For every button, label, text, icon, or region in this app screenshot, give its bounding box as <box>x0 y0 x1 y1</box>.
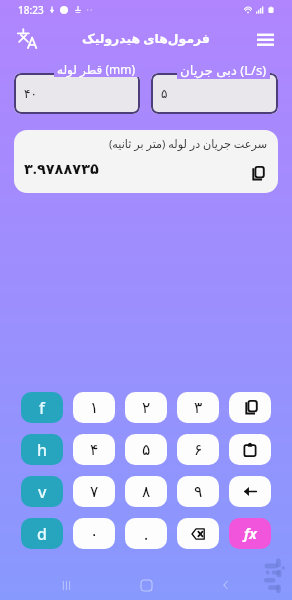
button[interactable]: h <box>21 434 63 465</box>
staticText: ۵ <box>161 87 168 101</box>
staticText: ۳ <box>194 399 203 417</box>
button[interactable]: d <box>21 518 63 549</box>
button[interactable]: ۵ <box>125 434 167 465</box>
staticText: ۳.۹۷۸۸۷۳۵ <box>24 158 99 178</box>
staticText: 18:23 <box>18 3 44 17</box>
button[interactable]: Menu <box>249 22 281 54</box>
button[interactable]: Formulas <box>229 518 271 549</box>
staticText: ۷ <box>90 483 99 501</box>
staticText: fx <box>244 524 257 543</box>
staticText: ۰ <box>90 525 99 543</box>
button[interactable]: ۳ <box>177 392 219 423</box>
staticText: ۲ <box>142 399 151 417</box>
staticText: ۹ <box>194 483 203 501</box>
button[interactable]: ۴ <box>73 434 115 465</box>
staticText: f <box>39 397 45 419</box>
button[interactable]: ۸ <box>125 476 167 507</box>
button[interactable]: ۵ <box>151 73 278 114</box>
staticText: ۴ <box>90 441 99 459</box>
staticText: ۴۰ <box>24 87 37 101</box>
button[interactable]: Delete <box>177 518 219 549</box>
button[interactable]: Copy result <box>249 165 265 181</box>
staticText: ۶ <box>194 441 203 459</box>
button[interactable]: ۴۰ <box>14 73 140 114</box>
button[interactable]: Back <box>212 571 240 599</box>
staticText: ۸ <box>142 483 151 501</box>
button[interactable]: سرعت جریان در لوله (متر بر ثانیه) <box>14 130 278 193</box>
button[interactable]: Home <box>132 571 160 599</box>
staticText: دبی جریان (L/s) <box>180 61 267 79</box>
button[interactable]: ۰ <box>73 518 115 549</box>
staticText: قطر لوله (mm) <box>57 61 136 77</box>
button[interactable]: . <box>125 518 167 549</box>
staticText: d <box>37 523 47 545</box>
button[interactable]: ۱ <box>73 392 115 423</box>
button[interactable]: v <box>21 476 63 507</box>
staticText: فرمول‌های هیدرولیک <box>82 30 210 47</box>
button[interactable]: Back <box>229 476 271 507</box>
staticText: سرعت جریان در لوله (متر بر ثانیه) <box>109 136 268 151</box>
button[interactable]: ۹ <box>177 476 219 507</box>
staticText: ۵ <box>142 441 151 459</box>
button[interactable]: Recents <box>52 571 80 599</box>
staticText: h <box>37 439 48 461</box>
button[interactable]: ۶ <box>177 434 219 465</box>
button[interactable]: Paste <box>229 434 271 465</box>
staticText: v <box>38 481 47 503</box>
button[interactable]: Translate <box>11 22 43 54</box>
button[interactable]: ۲ <box>125 392 167 423</box>
staticText: ۱ <box>90 399 99 417</box>
button[interactable]: f <box>21 392 63 423</box>
button[interactable]: ۷ <box>73 476 115 507</box>
button[interactable]: Copy <box>229 392 271 423</box>
staticText: . <box>144 523 149 544</box>
